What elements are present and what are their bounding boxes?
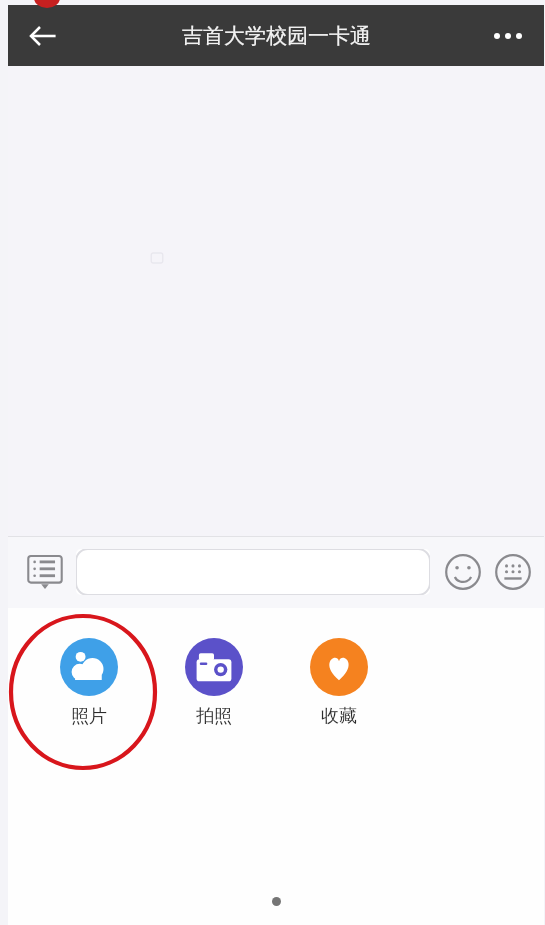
button[interactable]: More options <box>482 10 534 62</box>
staticText: 拍照 <box>196 705 232 728</box>
button[interactable]: Keyboard <box>490 549 536 595</box>
button[interactable]: 拍照 <box>151 636 276 730</box>
button[interactable] <box>76 549 430 595</box>
button[interactable]: Back <box>16 9 70 63</box>
button[interactable]: 收藏 <box>276 636 401 730</box>
button[interactable]: Emoji <box>440 549 486 595</box>
staticText: 吉首大学校园一卡通 <box>182 23 371 49</box>
staticText: 收藏 <box>321 705 357 728</box>
button[interactable]: 照片 <box>26 636 151 730</box>
staticText: 照片 <box>71 705 107 728</box>
button[interactable]: Menu <box>22 549 68 595</box>
